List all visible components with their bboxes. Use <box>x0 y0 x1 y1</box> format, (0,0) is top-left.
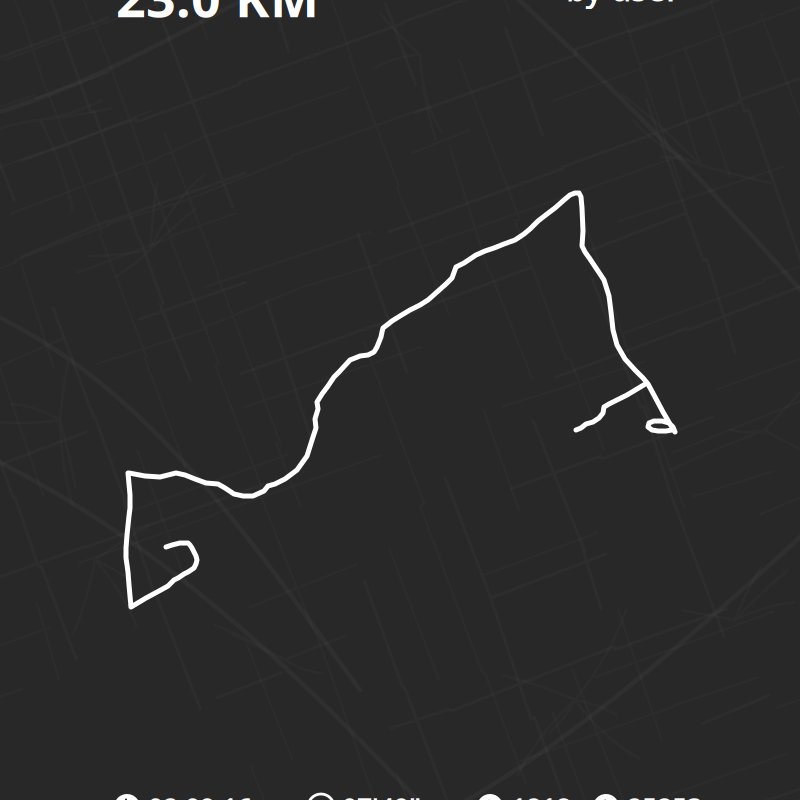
staticText: 07'49" <box>342 789 421 800</box>
button[interactable]: Elevation gain <box>477 789 571 800</box>
staticText: 25253 <box>627 789 702 800</box>
button[interactable]: 23.0 KM <box>116 0 319 32</box>
button[interactable]: Calories <box>593 789 702 800</box>
staticText: by user <box>566 0 680 10</box>
button[interactable]: Average pace <box>308 789 421 800</box>
staticText: 02:09:16 <box>148 789 252 800</box>
staticText: 23.0 KM <box>116 0 319 32</box>
button[interactable]: by user <box>566 0 680 10</box>
staticText: 1818 <box>511 789 571 800</box>
button[interactable]: Duration <box>114 789 252 800</box>
